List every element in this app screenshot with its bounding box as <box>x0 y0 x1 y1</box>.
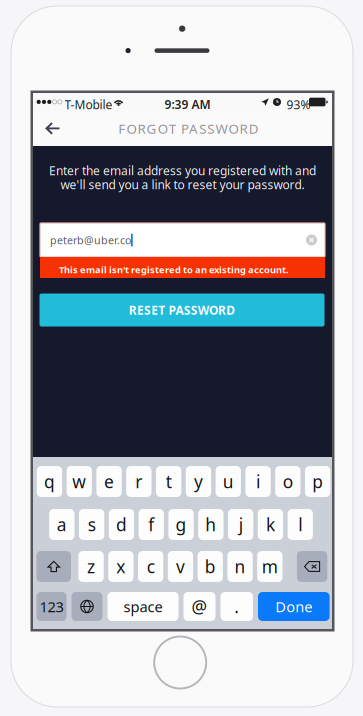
button[interactable]: b <box>198 551 223 582</box>
button[interactable]: s <box>79 509 104 540</box>
button[interactable]: Delete <box>297 551 327 582</box>
staticText: t <box>166 470 172 493</box>
button[interactable]: r <box>126 466 151 497</box>
button[interactable]: q <box>37 466 62 497</box>
button[interactable]: j <box>228 509 253 540</box>
button[interactable]: w <box>67 466 92 497</box>
staticText: o <box>283 470 293 493</box>
button[interactable]: p <box>305 466 330 497</box>
button[interactable]: i <box>245 466 271 497</box>
button[interactable]: e <box>96 466 122 497</box>
staticText: x <box>116 555 125 578</box>
staticText: d <box>116 513 127 536</box>
staticText: we'll send you a link to reset your pass… <box>60 176 304 192</box>
button[interactable]: f <box>139 509 164 540</box>
staticText: Done <box>275 597 312 616</box>
staticText: c <box>147 555 155 578</box>
button[interactable]: a <box>49 509 74 540</box>
staticText: @ <box>191 595 207 618</box>
button[interactable]: v <box>168 551 193 582</box>
button[interactable]: l <box>288 509 313 540</box>
button[interactable]: Switch keyboard <box>71 592 102 621</box>
staticText: FORGOT PASSWORD <box>118 120 259 137</box>
button[interactable]: @ <box>183 592 215 621</box>
staticText: q <box>44 470 55 493</box>
staticText: y <box>194 470 203 493</box>
staticText: u <box>223 470 234 493</box>
staticText: s <box>88 513 96 536</box>
staticText: e <box>104 470 114 493</box>
staticText: h <box>205 513 216 536</box>
button[interactable]: Back <box>33 111 81 146</box>
button[interactable]: y <box>186 466 211 497</box>
staticText: 93% <box>286 97 310 112</box>
staticText: n <box>235 555 246 578</box>
button[interactable]: space <box>107 592 178 621</box>
button[interactable]: d <box>109 509 134 540</box>
staticText: . <box>234 595 239 618</box>
button[interactable]: n <box>227 551 253 582</box>
staticText: j <box>239 513 243 536</box>
staticText: z <box>87 555 95 578</box>
button[interactable]: u <box>216 466 241 497</box>
button[interactable]: RESET PASSWORD <box>39 293 324 326</box>
staticText: peterb@uber.co <box>50 233 131 247</box>
button[interactable]: . <box>220 592 253 621</box>
button[interactable]: g <box>168 509 194 540</box>
staticText: k <box>266 513 275 536</box>
button[interactable]: o <box>275 466 300 497</box>
staticText: b <box>205 555 216 578</box>
staticText: l <box>298 513 302 536</box>
staticText: T-Mobile <box>64 97 112 112</box>
staticText: r <box>135 470 142 493</box>
button[interactable]: t <box>156 466 181 497</box>
staticText: space <box>123 597 162 616</box>
staticText: p <box>312 470 323 493</box>
staticText: i <box>256 470 260 493</box>
staticText: f <box>148 513 154 536</box>
staticText: g <box>176 513 187 536</box>
staticText: v <box>176 555 185 578</box>
button[interactable]: k <box>258 509 283 540</box>
staticText: RESET PASSWORD <box>129 302 235 318</box>
staticText: 9:39 AM <box>164 96 210 112</box>
button[interactable]: Shift <box>36 551 71 582</box>
button[interactable]: c <box>138 551 163 582</box>
button[interactable]: 123 <box>36 592 66 621</box>
button[interactable]: m <box>257 551 282 582</box>
button[interactable]: x <box>108 551 133 582</box>
button[interactable]: h <box>198 509 223 540</box>
staticText: a <box>57 513 67 536</box>
staticText: Enter the email address you registered w… <box>49 162 316 178</box>
staticText: 123 <box>39 597 63 616</box>
button[interactable]: Done <box>258 592 330 621</box>
staticText: This email isn't registered to an existi… <box>59 263 289 276</box>
staticText: m <box>262 555 278 578</box>
button[interactable]: z <box>78 551 104 582</box>
staticText: w <box>72 470 86 493</box>
